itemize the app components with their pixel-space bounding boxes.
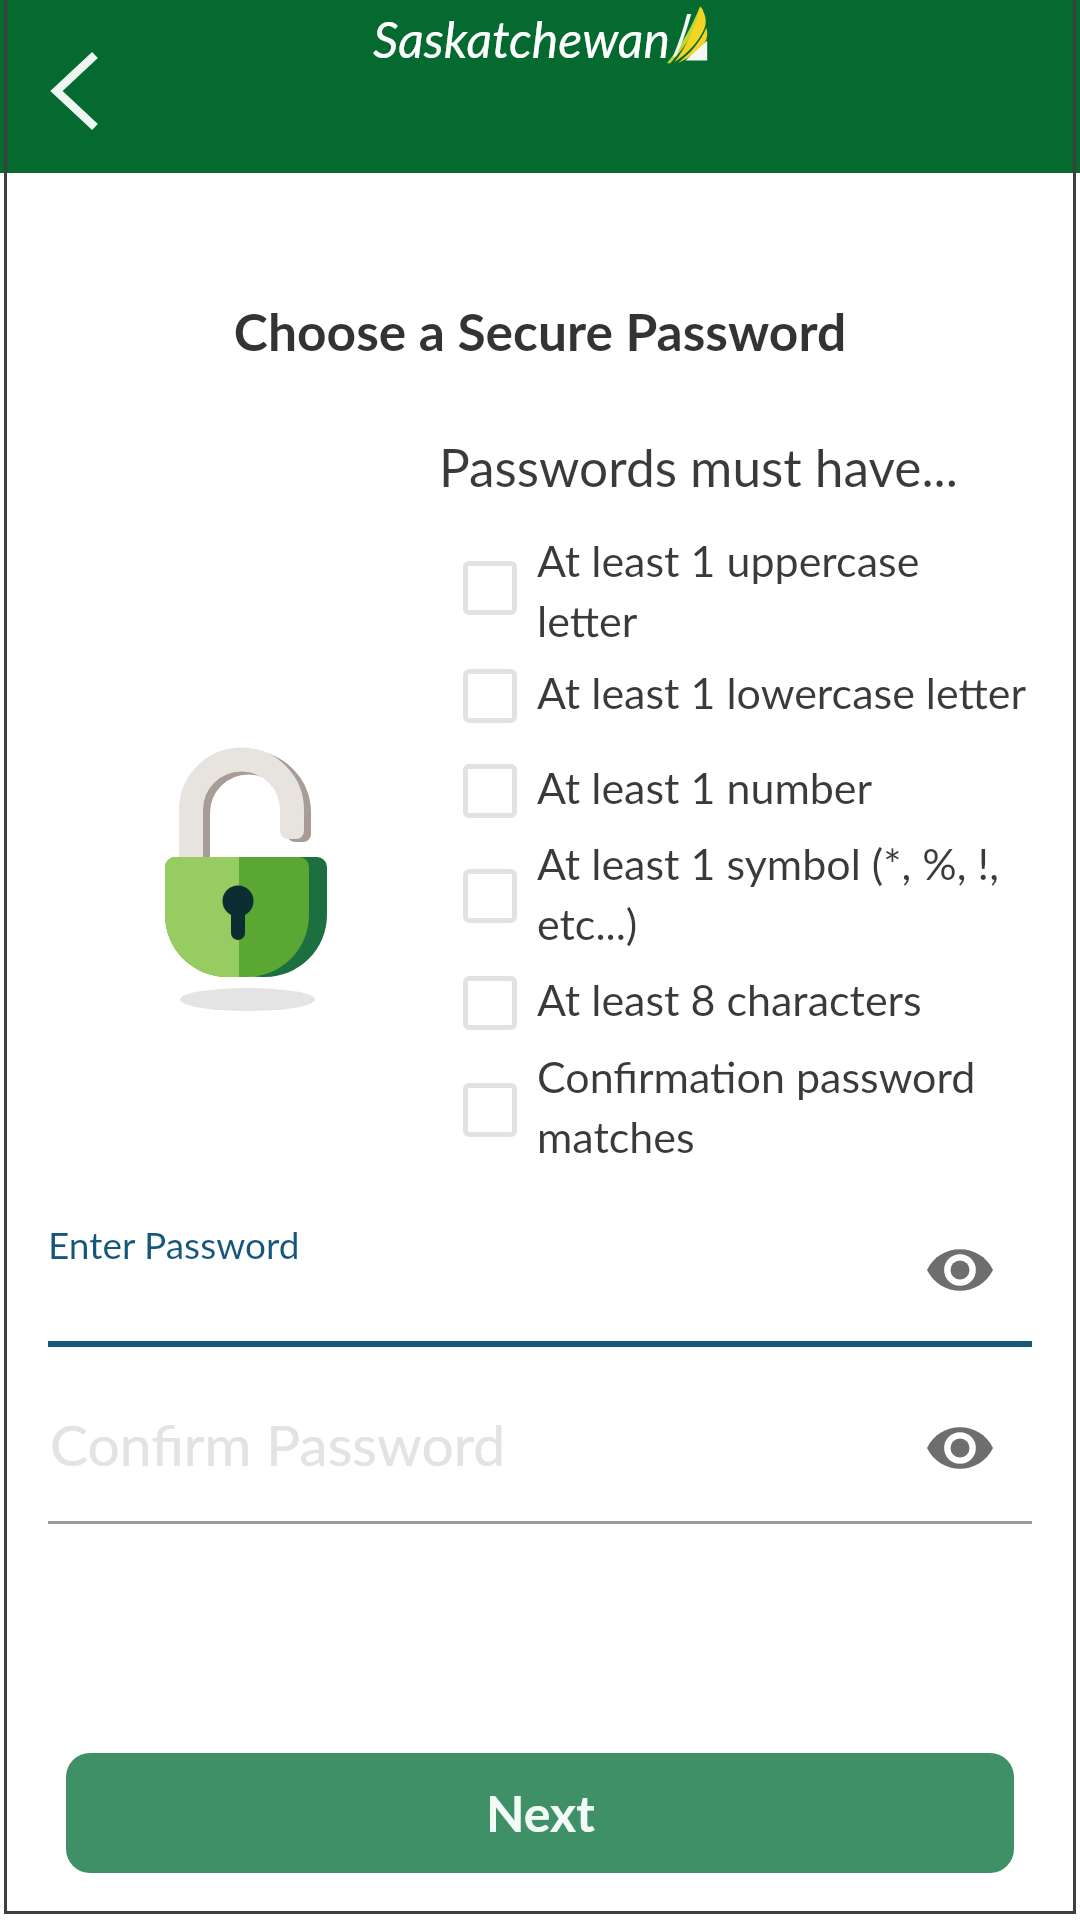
staticText: Confirm Password <box>50 1410 506 1478</box>
staticText: At least 1 symbol (*, %, !, etc...) <box>537 838 1027 950</box>
button[interactable] <box>455 535 1032 655</box>
staticText: Saskatchewan <box>373 9 670 69</box>
button[interactable]: Show confirm password <box>913 1413 1007 1483</box>
staticText: Next <box>486 1783 595 1843</box>
staticText: At least 1 uppercase letter <box>537 535 1027 647</box>
button[interactable] <box>455 750 1032 826</box>
staticText: Enter Password <box>48 1222 300 1266</box>
staticText: At least 1 number <box>537 762 1027 814</box>
button[interactable]: Show password <box>913 1235 1007 1305</box>
button[interactable]: Enter Password field <box>48 1205 1032 1347</box>
button[interactable] <box>455 826 1032 962</box>
button[interactable]: Confirm Password field <box>48 1395 1032 1524</box>
button[interactable] <box>455 655 1032 750</box>
button[interactable]: Back <box>32 44 118 130</box>
button[interactable]: Next <box>66 1753 1014 1873</box>
staticText: Passwords must have... <box>439 436 958 498</box>
button[interactable] <box>455 962 1032 1039</box>
staticText: Confirmation password matches <box>537 1051 1027 1163</box>
staticText: At least 8 characters <box>537 974 1027 1026</box>
button[interactable] <box>455 1039 1032 1169</box>
staticText: Choose a Secure Password <box>0 300 1080 362</box>
staticText: At least 1 lowercase letter <box>537 667 1027 719</box>
other: Government of Saskatchewan logo <box>666 2 708 64</box>
